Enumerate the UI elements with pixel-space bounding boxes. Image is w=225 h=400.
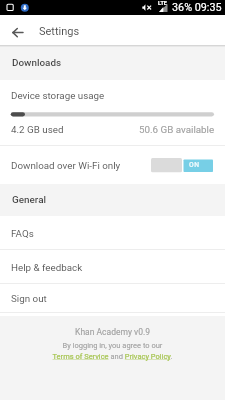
button[interactable]: Download over Wi-Fi only xyxy=(0,146,225,184)
staticText: 4.2 GB used xyxy=(11,124,64,135)
staticText: 50.6 GB available xyxy=(139,124,215,135)
button[interactable]: Download over Wi-Fi only toggle xyxy=(151,158,214,173)
staticText: 36% 09:35 xyxy=(172,1,222,14)
staticText: ON xyxy=(189,161,200,169)
staticText: FAQs xyxy=(11,228,34,239)
staticText: Help & feedback xyxy=(11,262,83,273)
staticText: Settings xyxy=(39,25,80,38)
button[interactable]: Back xyxy=(0,15,26,45)
staticText: Khan Academy v0.9 xyxy=(0,327,225,337)
staticText: Device storage usage xyxy=(11,90,105,101)
staticText: Downloads xyxy=(12,57,62,69)
staticText: Download over Wi-Fi only xyxy=(11,160,121,171)
button[interactable]: Help & feedback xyxy=(0,250,225,284)
button[interactable]: Terms of Service and Privacy Policy. xyxy=(0,352,225,361)
button[interactable]: Sign out xyxy=(0,284,225,313)
staticText: General xyxy=(12,194,47,206)
button[interactable]: FAQs xyxy=(0,216,225,250)
staticText: By logging in, you agree to our xyxy=(0,341,225,350)
staticText: LTE xyxy=(158,0,167,6)
staticText: Sign out xyxy=(11,293,47,304)
